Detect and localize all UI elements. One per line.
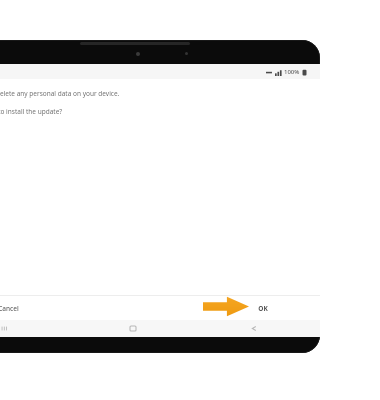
other: Annotation arrow pointing to OK: [203, 296, 249, 317]
button[interactable]: Recent apps: [0, 320, 14, 337]
staticText: Cancel: [0, 304, 19, 313]
button[interactable]: Back: [245, 320, 263, 337]
staticText: Do you want to install the update?: [0, 107, 63, 116]
staticText: 100%: [284, 68, 300, 76]
button[interactable]: Home: [124, 320, 142, 337]
staticText: OK: [258, 304, 268, 313]
button[interactable]: OK: [248, 299, 278, 318]
button[interactable]: Cancel: [0, 299, 29, 318]
staticText: This will not delete any personal data o…: [0, 89, 120, 98]
